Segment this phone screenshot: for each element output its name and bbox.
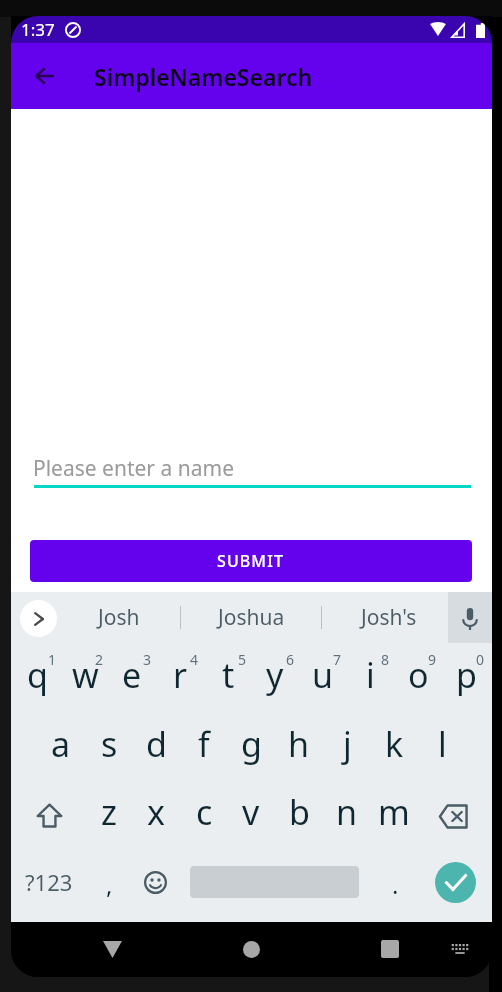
button[interactable]: , (89, 856, 129, 912)
button[interactable]: g (227, 710, 275, 778)
staticText: 9 (428, 650, 437, 669)
staticText: q (27, 652, 48, 698)
staticText: r (173, 652, 188, 698)
button[interactable]: d (132, 710, 180, 778)
staticText: 1:37 (21, 18, 55, 41)
button[interactable]: e (108, 641, 156, 709)
button[interactable]: s (85, 710, 133, 778)
staticText: 0 (476, 650, 485, 669)
staticText: h (288, 721, 310, 767)
staticText: c (196, 789, 213, 835)
staticText: 1 (48, 650, 57, 669)
button[interactable]: Switch keyboard (426, 925, 492, 973)
button[interactable]: Emoji (133, 854, 177, 910)
button[interactable]: q (13, 641, 61, 709)
staticText: 7 (333, 650, 342, 669)
staticText: f (198, 721, 210, 767)
staticText: s (101, 721, 118, 767)
staticText: y (266, 652, 284, 698)
button[interactable]: . (373, 856, 417, 912)
button[interactable]: Recent apps (356, 925, 424, 973)
button[interactable]: Enter (423, 854, 487, 910)
staticText: g (241, 721, 262, 767)
staticText: 4 (190, 650, 199, 669)
button[interactable]: Navigate up (22, 54, 66, 98)
button[interactable]: w (61, 641, 109, 709)
staticText: 6 (286, 650, 295, 669)
button[interactable]: p (442, 641, 490, 709)
button[interactable]: SUBMIT (30, 540, 472, 582)
staticText: , (106, 868, 113, 901)
button[interactable]: Backspace (417, 782, 489, 850)
button[interactable]: Voice input (448, 592, 492, 643)
button[interactable]: h (275, 710, 323, 778)
staticText: p (456, 652, 477, 698)
staticText: u (312, 652, 334, 698)
button[interactable]: More suggestions (20, 600, 57, 637)
button[interactable]: m (370, 778, 418, 846)
staticText: j (343, 721, 352, 767)
staticText: 3 (143, 650, 152, 669)
staticText: 5 (238, 650, 247, 669)
button[interactable]: t (204, 641, 252, 709)
staticText: w (72, 652, 99, 698)
button[interactable]: u (299, 641, 347, 709)
button[interactable]: Shift (13, 781, 85, 849)
staticText: 8 (381, 650, 390, 669)
button[interactable]: f (180, 710, 228, 778)
staticText: o (408, 652, 429, 698)
button[interactable]: ?123 (11, 854, 86, 910)
staticText: a (51, 721, 71, 767)
button[interactable]: x (132, 778, 180, 846)
staticText: d (146, 721, 167, 767)
button[interactable]: Josh (57, 592, 180, 643)
staticText: SimpleNameSearch (94, 61, 313, 92)
button[interactable]: z (85, 778, 133, 846)
staticText: Josh (98, 603, 140, 632)
button[interactable]: a (37, 710, 85, 778)
staticText: k (385, 721, 404, 767)
button[interactable]: n (323, 778, 371, 846)
button[interactable]: r (156, 641, 204, 709)
button[interactable]: c (180, 778, 228, 846)
staticText: . (392, 868, 399, 901)
staticText: Joshua (218, 603, 285, 632)
staticText: v (242, 789, 260, 835)
staticText: 2 (95, 650, 104, 669)
button[interactable]: l (418, 710, 466, 778)
button[interactable]: Joshua (181, 592, 321, 643)
staticText: b (289, 789, 310, 835)
staticText: Please enter a name (33, 454, 234, 483)
button[interactable]: Home (217, 925, 285, 973)
button[interactable]: b (275, 778, 323, 846)
staticText: t (222, 652, 235, 698)
staticText: i (366, 652, 375, 698)
button[interactable]: Back (78, 925, 146, 973)
button[interactable]: j (323, 710, 371, 778)
button[interactable]: Josh's (326, 592, 452, 643)
button[interactable]: y (251, 641, 299, 709)
staticText: ?123 (25, 867, 73, 897)
staticText: x (147, 789, 165, 835)
button[interactable] (179, 854, 369, 910)
staticText: m (378, 789, 410, 835)
button[interactable]: i (346, 641, 394, 709)
staticText: e (122, 652, 142, 698)
button[interactable]: k (370, 710, 418, 778)
staticText: n (336, 789, 358, 835)
staticText: z (101, 789, 117, 835)
staticText: SUBMIT (217, 550, 285, 572)
staticText: l (438, 721, 447, 767)
button[interactable]: v (227, 778, 275, 846)
staticText: Josh's (361, 603, 417, 632)
button[interactable]: o (394, 641, 442, 709)
